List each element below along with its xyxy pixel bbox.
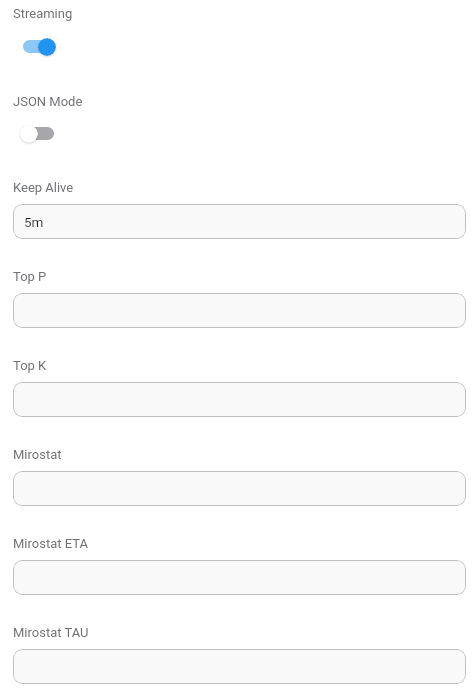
staticText: Streaming xyxy=(13,6,73,21)
staticText: Mirostat TAU xyxy=(13,625,89,640)
button[interactable]: Mirostat xyxy=(13,471,466,506)
button[interactable]: JSON Mode, off xyxy=(13,117,61,152)
button[interactable]: Keep Alive xyxy=(13,204,466,239)
staticText: 5m xyxy=(24,214,44,230)
staticText: Mirostat ETA xyxy=(13,536,88,551)
button[interactable]: Streaming, on xyxy=(13,29,61,64)
button[interactable]: Mirostat TAU xyxy=(13,649,466,684)
button[interactable]: Top K xyxy=(13,382,466,417)
staticText: Top P xyxy=(13,269,47,284)
button[interactable]: Top P xyxy=(13,293,466,328)
staticText: Top K xyxy=(13,358,47,373)
staticText: JSON Mode xyxy=(13,94,83,109)
staticText: Mirostat xyxy=(13,447,62,462)
staticText: Keep Alive xyxy=(13,180,74,195)
button[interactable]: Mirostat ETA xyxy=(13,560,466,595)
